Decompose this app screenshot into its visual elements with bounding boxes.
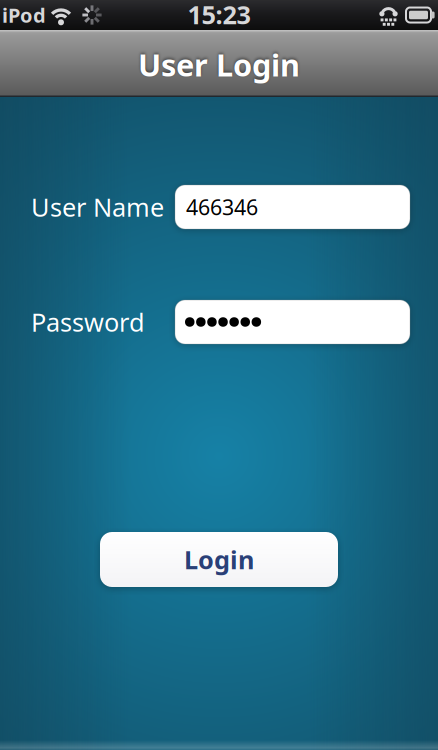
staticText: 466346 [186, 193, 258, 221]
staticText: Password [31, 305, 145, 339]
staticText: User Name [31, 190, 164, 224]
staticText: User Login [138, 44, 300, 85]
staticText: iPod [2, 2, 46, 28]
staticText: Login [184, 543, 254, 576]
button[interactable]: User Name text field [175, 185, 410, 229]
button[interactable]: Login [100, 532, 338, 587]
button[interactable]: Password text field [175, 300, 410, 344]
staticText: 15:23 [187, 0, 250, 31]
